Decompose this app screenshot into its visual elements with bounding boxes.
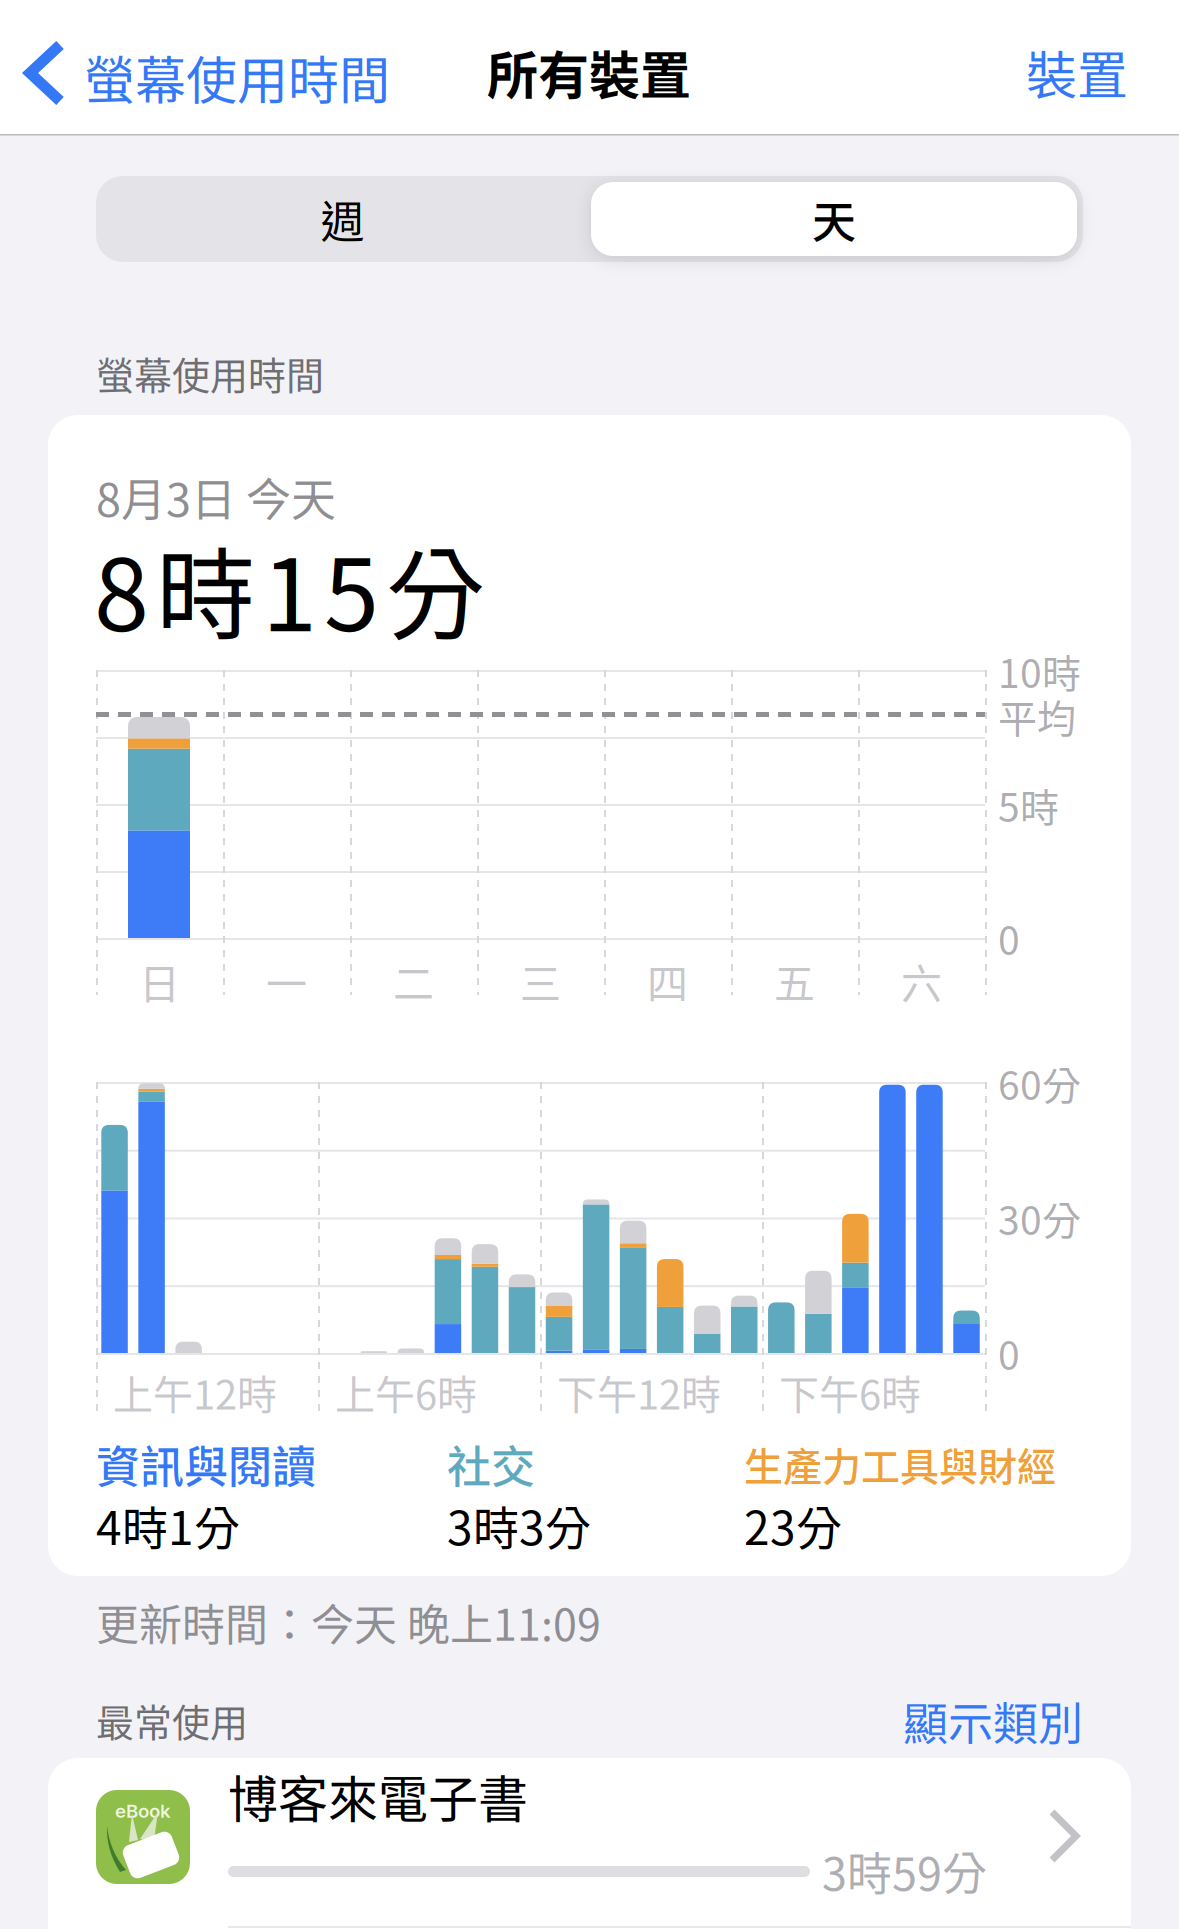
staticText: 生產力工具與財經 [744, 1436, 1056, 1492]
button[interactable]: 裝置 [1008, 20, 1128, 124]
staticText: 二 [393, 951, 434, 1011]
staticText: 資訊與閱讀 [96, 1432, 316, 1496]
staticText: 三 [520, 951, 561, 1011]
staticText: 60分 [998, 1055, 1081, 1111]
staticText: 4時1分 [96, 1492, 240, 1558]
staticText: 四 [647, 951, 688, 1011]
button[interactable]: eBook [48, 1758, 1131, 1929]
staticText: 0 [998, 910, 1020, 966]
staticText: 30分 [998, 1190, 1081, 1246]
staticText: 週 [320, 187, 364, 251]
staticText: 所有裝置 [487, 35, 691, 109]
staticText: 0 [998, 1325, 1020, 1381]
staticText: 10時 [998, 643, 1081, 699]
staticText: 下午6時 [779, 1363, 921, 1421]
button[interactable]: 螢幕使用時間 [20, 5, 420, 129]
staticText: 裝置 [1026, 35, 1128, 109]
staticText: 螢幕使用時間 [84, 40, 390, 114]
staticText: 下午12時 [557, 1363, 721, 1421]
staticText: 六 [901, 951, 942, 1011]
staticText: 上午6時 [335, 1363, 477, 1421]
staticText: 博客來電子書 [228, 1760, 528, 1832]
staticText: 8時15分 [94, 516, 485, 660]
staticText: 社交 [447, 1432, 535, 1496]
button[interactable]: 顯示類別 [0, 0, 1179, 1929]
button[interactable]: 天 [591, 182, 1077, 256]
staticText: 日 [139, 951, 180, 1011]
staticText: 五 [774, 951, 815, 1011]
staticText: 螢幕使用時間 [96, 345, 324, 400]
staticText: 8月3日 今天 [96, 464, 336, 530]
staticText: 顯示類別 [903, 1688, 1083, 1754]
staticText: 上午12時 [113, 1363, 277, 1421]
staticText: 更新時間：今天 晚上11:09 [96, 1591, 601, 1653]
staticText: eBook [115, 1800, 171, 1822]
staticText: 一 [266, 951, 307, 1011]
staticText: 天 [812, 187, 856, 251]
staticText: 平均 [998, 688, 1076, 744]
staticText: 5時 [998, 777, 1059, 833]
staticText: 3時59分 [822, 1838, 987, 1904]
staticText: 3時3分 [447, 1492, 591, 1558]
staticText: 23分 [744, 1492, 842, 1558]
staticText: 最常使用 [96, 1692, 248, 1747]
button[interactable]: 週 [96, 176, 589, 262]
